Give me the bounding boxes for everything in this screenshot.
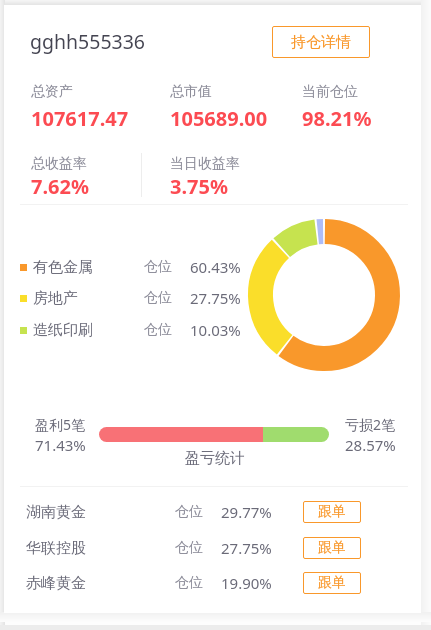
staticText: 持仓详情 (291, 33, 351, 52)
staticText: 总市值 (170, 83, 212, 101)
staticText: 27.75% (221, 538, 272, 558)
staticText: 房地产 (33, 289, 78, 308)
staticText: 仓位 (175, 539, 203, 557)
button[interactable]: 跟单 (303, 501, 361, 523)
button[interactable]: 湖南黄金 (4, 495, 421, 529)
staticText: 7.62% (31, 173, 89, 200)
button[interactable]: 持仓详情 (272, 26, 370, 58)
button[interactable]: 华联控股 (4, 531, 421, 565)
staticText: 98.21% (302, 105, 372, 132)
staticText: 有色金属 (33, 258, 93, 277)
staticText: 当日收益率 (170, 155, 240, 173)
staticText: 华联控股 (26, 539, 86, 558)
staticText: 总资产 (31, 83, 73, 101)
staticText: 29.77% (221, 502, 272, 522)
button[interactable]: 赤峰黄金 (4, 566, 421, 600)
staticText: 10.03% (190, 320, 241, 340)
staticText: 仓位 (175, 574, 203, 592)
staticText: 跟单 (318, 539, 346, 557)
button[interactable]: 跟单 (303, 572, 361, 594)
staticText: 105689.00 (170, 105, 268, 132)
staticText: 仓位 (144, 321, 172, 339)
staticText: 仓位 (175, 503, 203, 521)
staticText: 造纸印刷 (33, 321, 93, 340)
staticText: 湖南黄金 (26, 503, 86, 522)
staticText: 总收益率 (31, 155, 87, 173)
staticText: 仓位 (144, 289, 172, 307)
staticText: 27.75% (190, 288, 241, 308)
staticText: 71.43% (35, 435, 86, 455)
staticText: 盈亏统计 (185, 449, 245, 468)
staticText: 107617.47 (31, 105, 129, 132)
staticText: 当前仓位 (302, 83, 358, 101)
staticText: gghh555336 (30, 28, 146, 55)
staticText: 跟单 (318, 574, 346, 592)
staticText: 19.90% (221, 573, 272, 593)
staticText: 盈利5笔 (35, 415, 86, 434)
staticText: 28.57% (345, 435, 396, 455)
staticText: 赤峰黄金 (26, 574, 86, 593)
button[interactable]: 跟单 (303, 537, 361, 559)
staticText: 3.75% (170, 173, 228, 200)
staticText: 跟单 (318, 503, 346, 521)
staticText: 60.43% (190, 257, 241, 277)
staticText: 亏损2笔 (345, 415, 396, 434)
staticText: 仓位 (144, 258, 172, 276)
